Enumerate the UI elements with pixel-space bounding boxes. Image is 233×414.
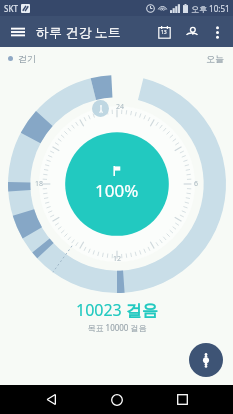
button[interactable]: 걷기 — [8, 53, 36, 64]
staticText: 6 — [194, 179, 199, 189]
staticText: 오늘 — [206, 53, 224, 64]
staticText: 100% — [95, 179, 139, 202]
button[interactable]: Recents — [167, 385, 197, 414]
button[interactable]: Calendar — [152, 20, 176, 44]
staticText: SKT — [4, 3, 18, 14]
staticText: 10023 — [76, 299, 126, 321]
staticText: 하루 건강 노트 — [36, 23, 121, 41]
staticText: 걷기 — [18, 53, 36, 64]
staticText: 18 — [35, 179, 44, 189]
button[interactable]: 오늘 — [206, 53, 224, 64]
staticText: 12 — [113, 254, 122, 264]
staticText: 걸음 — [126, 301, 158, 321]
button[interactable]: Menu — [7, 21, 29, 43]
staticText: 오후 10:51 — [191, 3, 230, 14]
button[interactable]: Location — [180, 20, 204, 44]
button[interactable]: Add entry — [189, 343, 223, 377]
button[interactable]: More options — [206, 21, 228, 43]
button[interactable]: Walking — [92, 100, 109, 117]
button[interactable]: 24 — [8, 75, 226, 293]
staticText: 24 — [116, 102, 125, 112]
button[interactable]: Back — [36, 385, 66, 414]
staticText: 13 — [161, 29, 167, 36]
staticText: 목표 10000 걸음 — [87, 322, 147, 333]
button[interactable]: Home — [102, 385, 132, 414]
